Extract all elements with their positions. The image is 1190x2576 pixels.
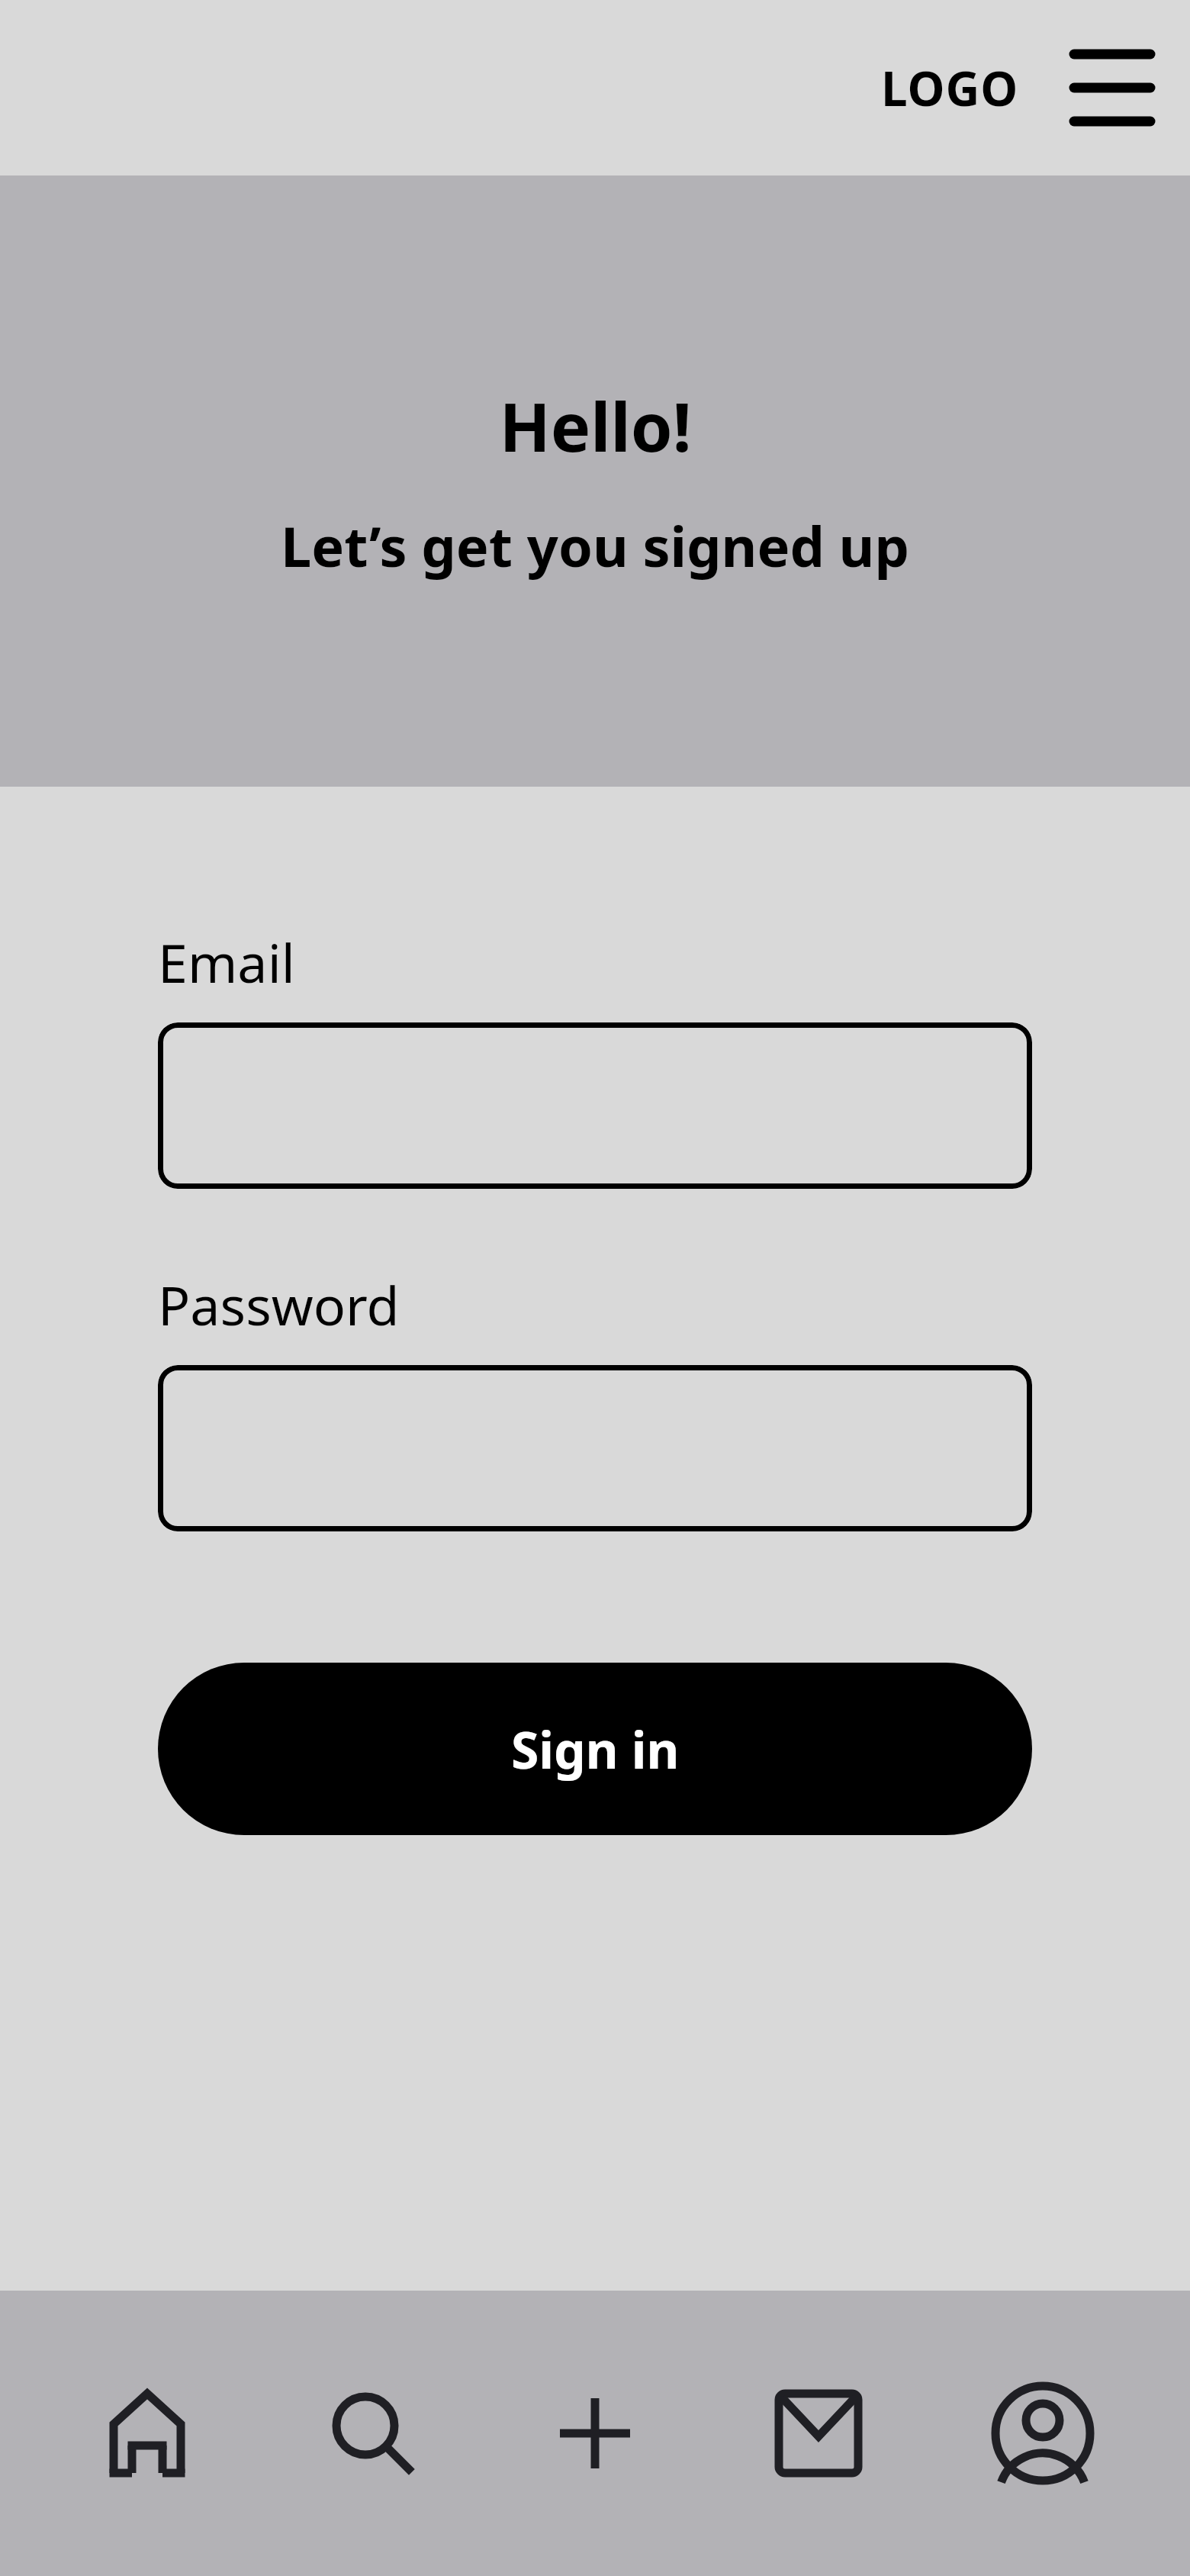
button[interactable]: Sign in [158,1663,1032,1835]
staticText: LOGO [881,56,1019,120]
staticText: Hello! [499,380,692,472]
staticText: Sign in [511,1715,680,1783]
button[interactable]: Menu [1062,37,1163,138]
staticText: Let’s get you signed up [281,508,909,583]
button[interactable]: Add [519,2291,671,2576]
button[interactable]: LOGO [873,45,1027,130]
button[interactable]: Search [295,2291,448,2576]
staticText: Password [158,1268,400,1341]
button[interactable]: Profile [966,2291,1119,2576]
button[interactable] [158,1365,1032,1531]
button[interactable]: Mail [742,2291,895,2576]
button[interactable] [158,1022,1032,1189]
button[interactable]: Home [71,2291,224,2576]
staticText: Email [158,926,295,998]
